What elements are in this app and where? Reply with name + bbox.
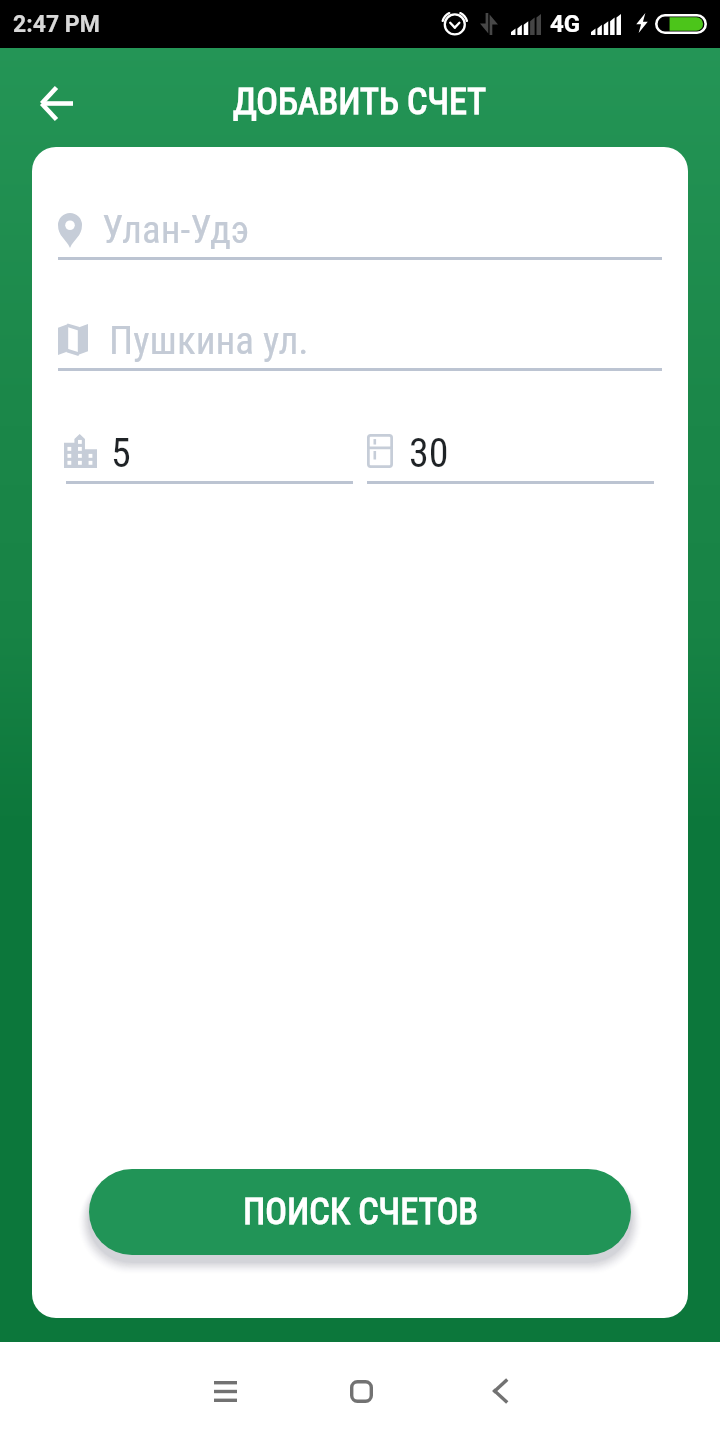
button[interactable]: ПОИСК СЧЕТОВ [89,1169,631,1255]
staticText: ПОИСК СЧЕТОВ [243,1191,478,1233]
staticText: 2:47 PM [13,11,100,38]
button[interactable]: Home [325,1355,397,1427]
button[interactable]: Back [463,1355,535,1427]
staticText: 5 [111,430,131,477]
button[interactable]: Back [28,75,84,131]
staticText: ДОБАВИТЬ СЧЕТ [233,81,487,123]
button[interactable]: Recents [189,1355,261,1427]
staticText: Пушкина ул. [109,318,309,364]
staticText: Улан-Удэ [102,207,250,253]
staticText: 30 [409,430,449,477]
staticText: 4G [550,10,581,38]
